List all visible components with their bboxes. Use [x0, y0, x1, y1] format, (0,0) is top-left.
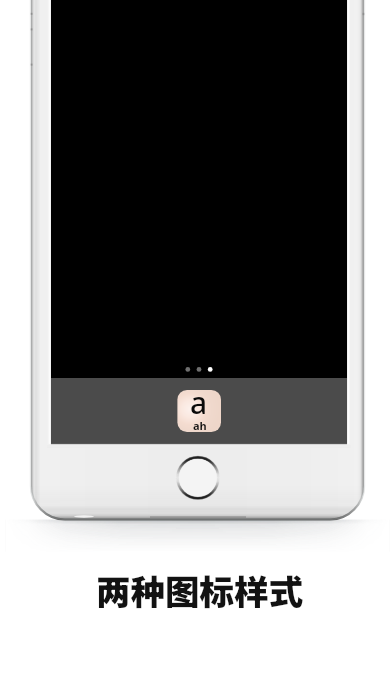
button[interactable]: ah app icon: [177, 390, 221, 432]
staticText: ah: [193, 418, 207, 433]
staticText: a: [190, 382, 208, 423]
staticText: 两种图标样式: [96, 565, 303, 615]
button[interactable]: 两种图标样式: [96, 565, 303, 615]
